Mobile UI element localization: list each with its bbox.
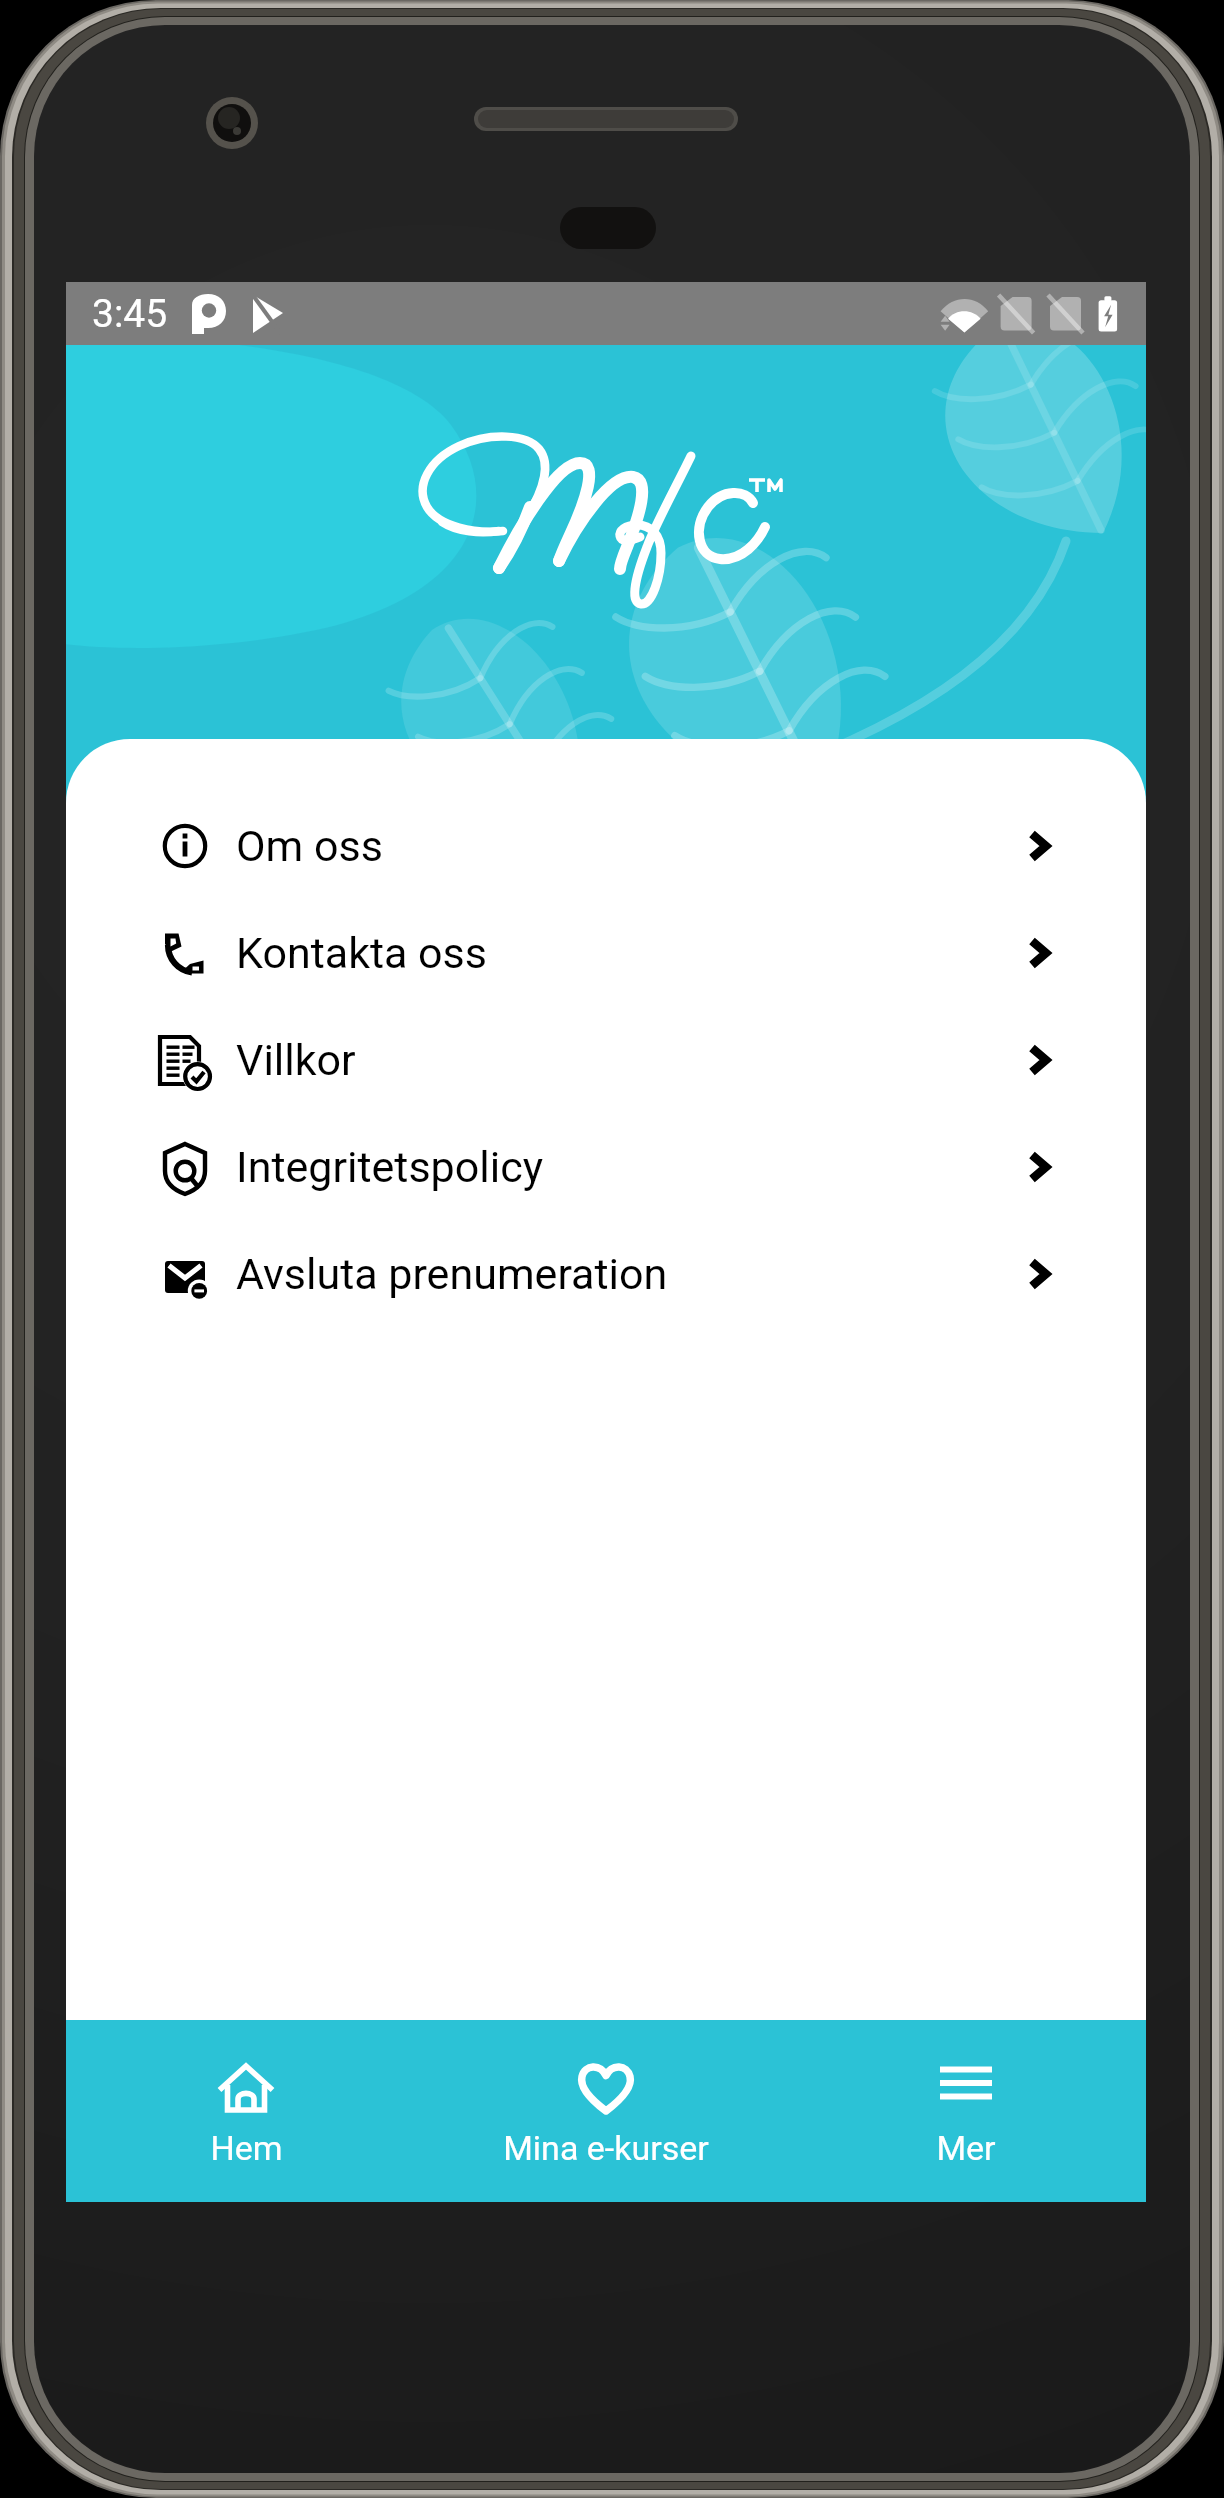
staticText: Om oss	[236, 821, 383, 871]
staticText: Mer	[936, 2128, 996, 2168]
button[interactable]: Villkor	[66, 1006, 1146, 1113]
staticText: Avsluta prenumeration	[236, 1249, 668, 1299]
staticText: Kontakta oss	[236, 928, 487, 978]
button[interactable]: Hem	[66, 2020, 426, 2202]
staticText: 3:45	[92, 291, 168, 337]
button[interactable]: Kontakta oss	[66, 899, 1146, 1006]
button[interactable]: Avsluta prenumeration	[66, 1220, 1146, 1327]
button[interactable]: Om oss	[66, 792, 1146, 899]
button[interactable]: Mina e-kurser	[426, 2020, 786, 2202]
staticText: Villkor	[236, 1035, 356, 1085]
staticText: Integritetspolicy	[236, 1142, 544, 1192]
button[interactable]: Mer	[786, 2020, 1146, 2202]
staticText: Mina e-kurser	[503, 2128, 709, 2168]
button[interactable]: Integritetspolicy	[66, 1113, 1146, 1220]
staticText: Hem	[210, 2128, 283, 2168]
